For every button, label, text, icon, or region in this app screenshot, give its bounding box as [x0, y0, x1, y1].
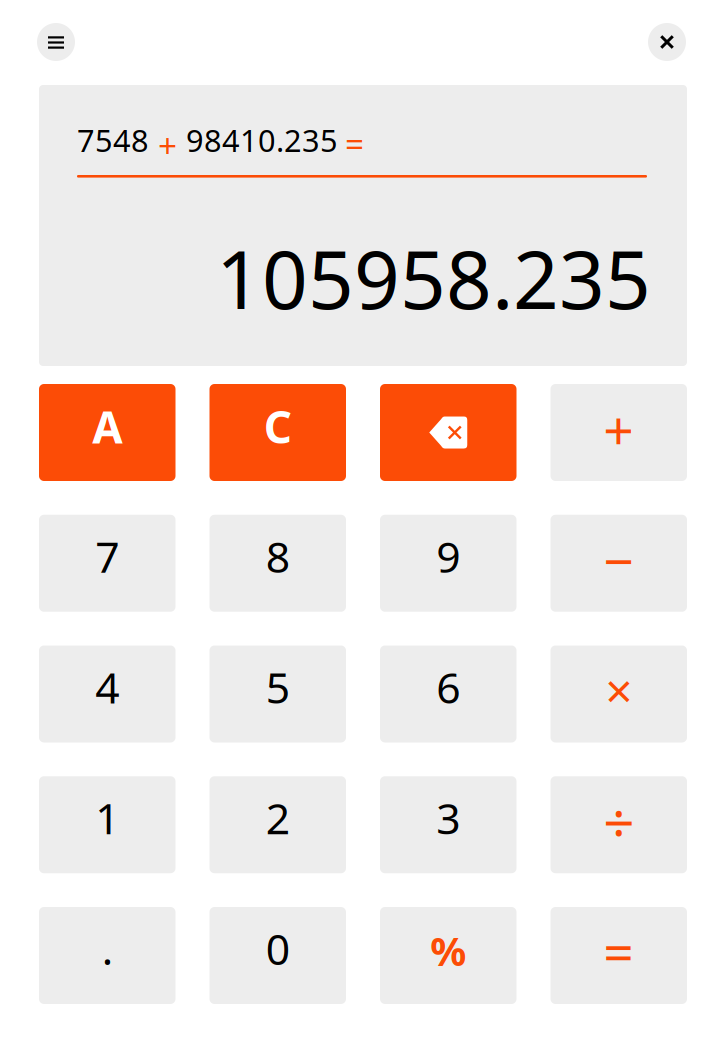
button[interactable]: ÷ [550, 776, 687, 873]
button[interactable]: % [380, 907, 516, 1004]
staticText: 1 [95, 789, 119, 846]
button[interactable]: 5 [209, 645, 346, 742]
staticText: ÷ [603, 786, 634, 859]
button[interactable]: = [550, 907, 687, 1004]
staticText: 7548 [77, 120, 149, 160]
staticText: + [158, 123, 177, 167]
button[interactable]: 6 [380, 645, 516, 742]
button[interactable]: 2 [209, 776, 346, 873]
button[interactable]: Menu [37, 23, 75, 61]
staticText: + [603, 394, 634, 465]
staticText: 3 [436, 789, 460, 846]
button[interactable]: Close [648, 23, 686, 61]
staticText: 6 [436, 659, 460, 715]
button[interactable]: A [39, 384, 175, 481]
button[interactable]: 1 [39, 776, 175, 873]
button[interactable]: 0 [209, 907, 346, 1004]
staticText: % [430, 924, 466, 977]
button[interactable]: . [39, 907, 175, 1004]
staticText: 2 [266, 789, 290, 846]
staticText: 4 [95, 659, 119, 715]
button[interactable]: − [550, 515, 687, 612]
button[interactable]: 8 [209, 515, 346, 612]
staticText: 0 [266, 920, 290, 977]
staticText: = [345, 121, 364, 165]
button[interactable]: 7 [39, 515, 175, 612]
staticText: 7 [95, 528, 119, 585]
staticText: − [603, 525, 634, 596]
staticText: 105958.235 [216, 225, 651, 331]
button[interactable]: × [550, 645, 687, 742]
staticText: 5 [266, 659, 290, 715]
staticText: = [603, 916, 634, 987]
button[interactable]: 9 [380, 515, 516, 612]
button[interactable]: Backspace [380, 384, 516, 481]
button[interactable]: 3 [380, 776, 516, 873]
button[interactable]: 4 [39, 645, 175, 742]
staticText: A [92, 397, 122, 456]
staticText: × [605, 658, 632, 722]
staticText: 8 [266, 528, 290, 585]
button[interactable]: C [209, 384, 346, 481]
staticText: . [102, 920, 113, 977]
staticText: 98410.235 [186, 120, 338, 160]
staticText: C [264, 397, 292, 456]
button[interactable]: + [550, 384, 687, 481]
staticText: 9 [436, 528, 460, 585]
